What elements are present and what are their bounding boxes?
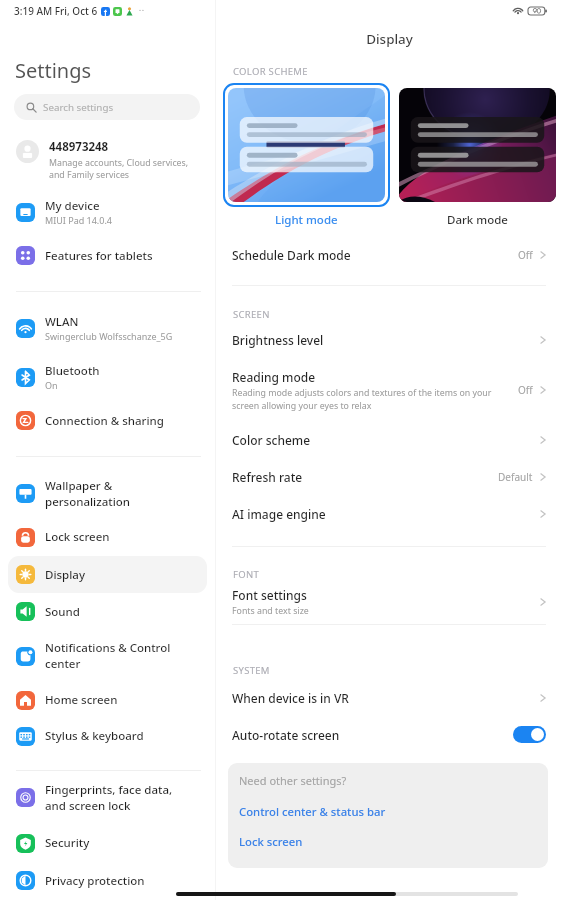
button[interactable]: My device xyxy=(8,187,207,237)
staticText: Stylus & keyboard xyxy=(45,728,144,744)
button[interactable]: WLAN xyxy=(8,304,207,352)
staticText: Off xyxy=(518,248,533,262)
staticText: Sound xyxy=(45,604,80,620)
staticText: Settings xyxy=(15,57,92,84)
staticText: Default xyxy=(498,470,533,484)
button[interactable]: Lock screen xyxy=(8,518,207,556)
staticText: Reading mode xyxy=(232,369,316,385)
staticText: Home screen xyxy=(45,692,118,708)
button[interactable]: 448973248 xyxy=(0,139,215,181)
staticText: Connection & sharing xyxy=(45,413,164,429)
staticText: Off xyxy=(518,383,533,397)
button[interactable]: Connection & sharing xyxy=(8,402,207,439)
button[interactable]: Security xyxy=(8,824,207,862)
button[interactable]: Lock screen xyxy=(239,834,303,849)
button[interactable] xyxy=(399,88,556,202)
other: Battery 90 percent xyxy=(528,7,547,15)
button[interactable]: Notifications & Control center xyxy=(8,630,207,682)
button[interactable]: Reading mode xyxy=(216,358,563,421)
staticText: SYSTEM xyxy=(233,664,270,677)
staticText: Fingerprints, face data, and screen lock xyxy=(45,782,173,814)
staticText: Font settings xyxy=(232,587,307,603)
staticText: When device is in VR xyxy=(232,690,349,706)
other: Wi-Fi xyxy=(512,6,524,14)
staticText: Swingerclub Wolfsschanze_5G xyxy=(45,330,173,342)
staticText: Display xyxy=(216,30,563,48)
button[interactable]: Color scheme xyxy=(216,421,563,458)
staticText: MIUI Pad 14.0.4 xyxy=(45,214,112,226)
staticText: Display xyxy=(45,567,85,583)
button[interactable] xyxy=(228,88,385,202)
staticText: Search settings xyxy=(43,101,114,114)
button[interactable]: Home screen xyxy=(8,682,207,718)
staticText: Privacy protection xyxy=(45,873,145,889)
button[interactable]: Display xyxy=(8,556,207,593)
staticText: Manage accounts, Cloud services, and Fam… xyxy=(49,157,189,181)
staticText: Notifications & Control center xyxy=(45,640,171,672)
button[interactable]: Privacy protection xyxy=(8,862,207,899)
staticText: WLAN xyxy=(45,314,79,330)
button[interactable]: Stylus & keyboard xyxy=(8,718,207,754)
staticText: Features for tablets xyxy=(45,248,153,264)
other: Facebook xyxy=(101,7,110,16)
button[interactable]: Schedule Dark mode xyxy=(216,238,563,272)
button[interactable]: Refresh rate xyxy=(216,458,563,495)
button[interactable]: When device is in VR xyxy=(216,679,563,716)
button[interactable]: Need other settings? xyxy=(228,763,548,868)
button[interactable]: Features for tablets xyxy=(8,237,207,274)
staticText: Light mode xyxy=(275,212,338,228)
staticText: Refresh rate xyxy=(232,469,303,485)
button[interactable]: Auto-rotate screen xyxy=(216,716,563,753)
button[interactable]: AI image engine xyxy=(216,495,563,532)
staticText: 3:19 AM Fri, Oct 6 xyxy=(14,4,98,18)
staticText: COLOR SCHEME xyxy=(233,65,308,78)
staticText: On xyxy=(45,379,58,391)
staticText: Bluetooth xyxy=(45,363,100,379)
staticText: FONT xyxy=(233,568,260,581)
button[interactable]: Font settings xyxy=(216,583,563,620)
staticText: SCREEN xyxy=(233,308,270,321)
staticText: Dark mode xyxy=(447,212,508,228)
staticText: AI image engine xyxy=(232,506,326,522)
staticText: Security xyxy=(45,835,90,851)
other: Notification xyxy=(113,7,122,16)
staticText: Need other settings? xyxy=(239,773,347,788)
button[interactable]: Bluetooth xyxy=(8,352,207,402)
staticText: Schedule Dark mode xyxy=(232,247,351,263)
staticText: Brightness level xyxy=(232,332,324,348)
staticText: Wallpaper & personalization xyxy=(45,478,131,510)
staticText: 448973248 xyxy=(49,139,109,155)
staticText: Lock screen xyxy=(45,529,110,545)
button[interactable]: Brightness level xyxy=(216,322,563,358)
button[interactable]: Control center & status bar xyxy=(239,804,386,819)
button[interactable]: Search settings xyxy=(14,94,200,120)
button[interactable]: Fingerprints, face data, and screen lock xyxy=(8,771,207,824)
staticText: My device xyxy=(45,198,100,214)
staticText: Color scheme xyxy=(232,432,311,448)
staticText: Auto-rotate screen xyxy=(232,727,513,743)
button[interactable]: Wallpaper & personalization xyxy=(8,469,207,518)
staticText: Fonts and text size xyxy=(232,605,309,617)
button[interactable]: Sound xyxy=(8,593,207,630)
staticText: Reading mode adjusts colors and textures… xyxy=(232,387,492,411)
